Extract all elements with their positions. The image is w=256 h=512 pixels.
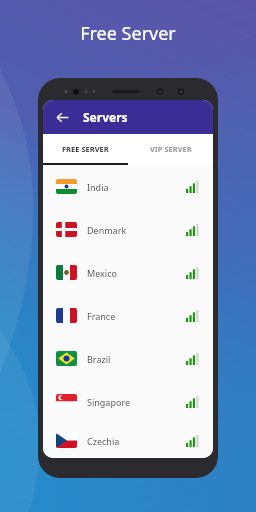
staticText: Singapore: [87, 396, 131, 408]
button[interactable]: India: [43, 165, 213, 208]
staticText: Servers: [83, 109, 128, 125]
button[interactable]: Back: [51, 106, 73, 128]
button[interactable]: Denmark: [43, 208, 213, 251]
staticText: Denmark: [87, 224, 127, 236]
staticText: FREE SERVER: [62, 144, 109, 154]
staticText: Brazil: [87, 353, 111, 365]
button[interactable]: Czechia: [43, 423, 213, 458]
button[interactable]: Mexico: [43, 251, 213, 294]
staticText: Czechia: [87, 435, 120, 447]
staticText: India: [87, 181, 109, 193]
button[interactable]: France: [43, 294, 213, 337]
staticText: Free Server: [80, 21, 176, 46]
button[interactable]: VIP SERVER: [128, 134, 213, 163]
button[interactable]: Singapore: [43, 380, 213, 423]
staticText: VIP SERVER: [150, 144, 192, 154]
staticText: France: [87, 310, 116, 322]
staticText: Mexico: [87, 267, 117, 279]
button[interactable]: Brazil: [43, 337, 213, 380]
button[interactable]: FREE SERVER: [43, 134, 128, 163]
